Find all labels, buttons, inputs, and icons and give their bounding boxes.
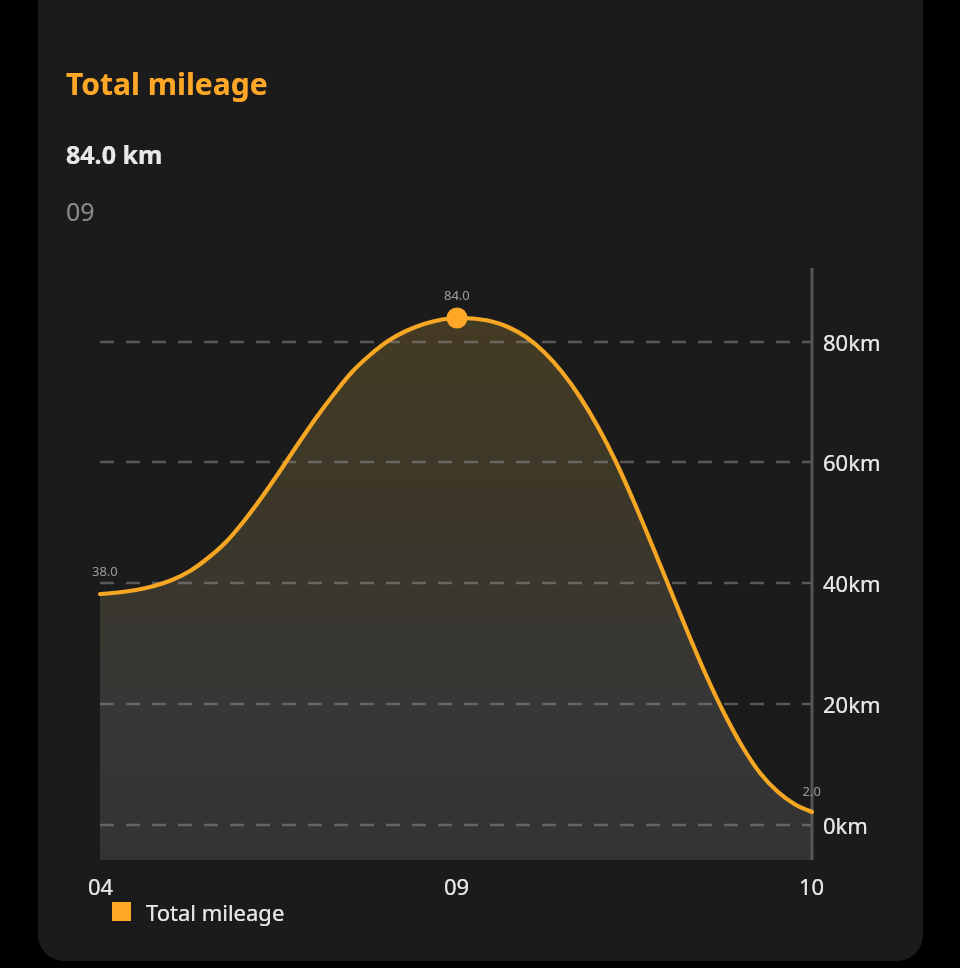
other: Total mileage chart bbox=[0, 0, 960, 968]
button[interactable] bbox=[0, 0, 960, 968]
